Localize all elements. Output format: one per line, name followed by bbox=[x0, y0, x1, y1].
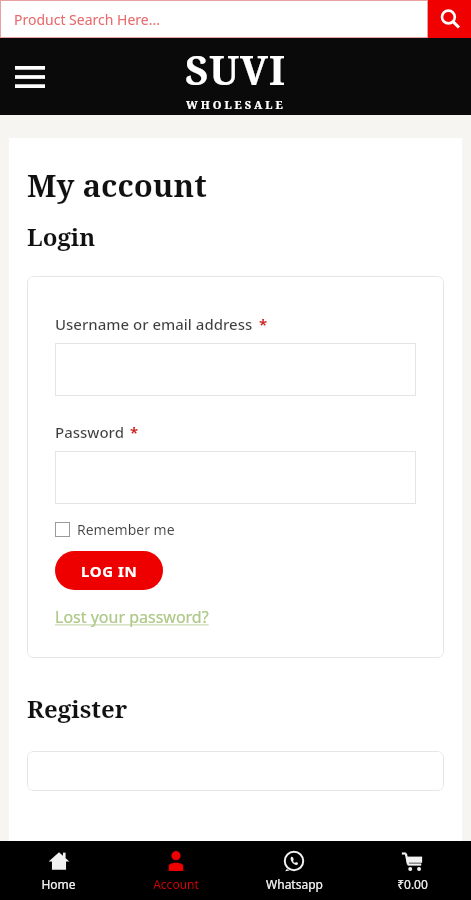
staticText: Login bbox=[27, 220, 96, 253]
button[interactable]: Account bbox=[117, 844, 235, 898]
button[interactable]: Lost your password? bbox=[55, 606, 209, 628]
button[interactable]: Search bbox=[428, 0, 471, 38]
button[interactable]: Menu bbox=[8, 55, 52, 99]
staticText: Username or email address bbox=[55, 314, 253, 334]
staticText: Home bbox=[41, 876, 76, 892]
staticText: SUVI bbox=[185, 42, 286, 96]
staticText: WHOLESALE bbox=[186, 97, 286, 112]
button[interactable]: Home bbox=[0, 844, 117, 898]
staticText: * bbox=[259, 314, 268, 334]
button[interactable]: Whatsapp bbox=[235, 844, 353, 898]
staticText: Account bbox=[153, 876, 199, 892]
staticText: ₹0.00 bbox=[397, 876, 428, 892]
staticText: Password bbox=[55, 422, 124, 442]
staticText: Product Search Here... bbox=[14, 10, 160, 29]
staticText: Lost your password? bbox=[55, 606, 209, 628]
button[interactable]: Remember me bbox=[55, 520, 175, 539]
staticText: My account bbox=[27, 164, 207, 206]
button[interactable]: ₹0.00 bbox=[353, 844, 471, 898]
staticText: Remember me bbox=[77, 520, 175, 539]
staticText: Whatsapp bbox=[266, 876, 323, 892]
staticText: * bbox=[130, 422, 139, 442]
button[interactable]: LOG IN bbox=[55, 551, 163, 590]
button[interactable] bbox=[55, 343, 416, 396]
button[interactable]: Product Search Here... bbox=[0, 0, 428, 38]
staticText: LOG IN bbox=[81, 561, 138, 581]
button[interactable] bbox=[55, 451, 416, 504]
staticText: Register bbox=[27, 692, 128, 725]
